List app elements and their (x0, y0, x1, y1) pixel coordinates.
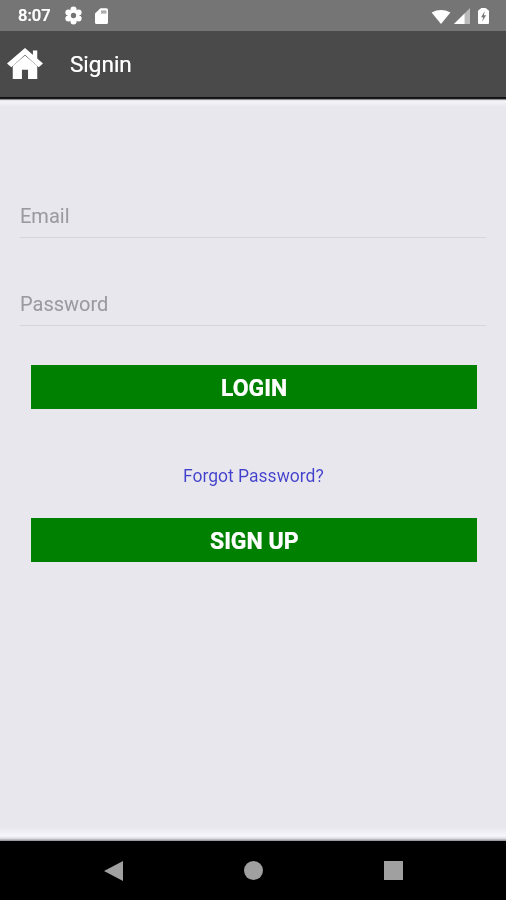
staticText: 8:07 (18, 6, 51, 25)
button[interactable]: SIGN UP (31, 518, 477, 562)
staticText: SIGN UP (210, 528, 299, 555)
button[interactable]: Back (74, 841, 152, 900)
staticText: Password (20, 292, 109, 315)
staticText: Forgot Password? (183, 466, 324, 487)
button[interactable]: Home (6, 45, 43, 81)
staticText: Email (20, 204, 70, 227)
button[interactable]: Password (0, 292, 506, 326)
button[interactable]: Home (214, 841, 292, 900)
staticText: Signin (70, 51, 132, 77)
button[interactable]: Email (0, 204, 506, 238)
button[interactable]: Recents (354, 841, 432, 900)
staticText: LOGIN (221, 375, 288, 402)
button[interactable]: LOGIN (31, 365, 477, 409)
button[interactable]: Forgot Password? (177, 463, 330, 490)
